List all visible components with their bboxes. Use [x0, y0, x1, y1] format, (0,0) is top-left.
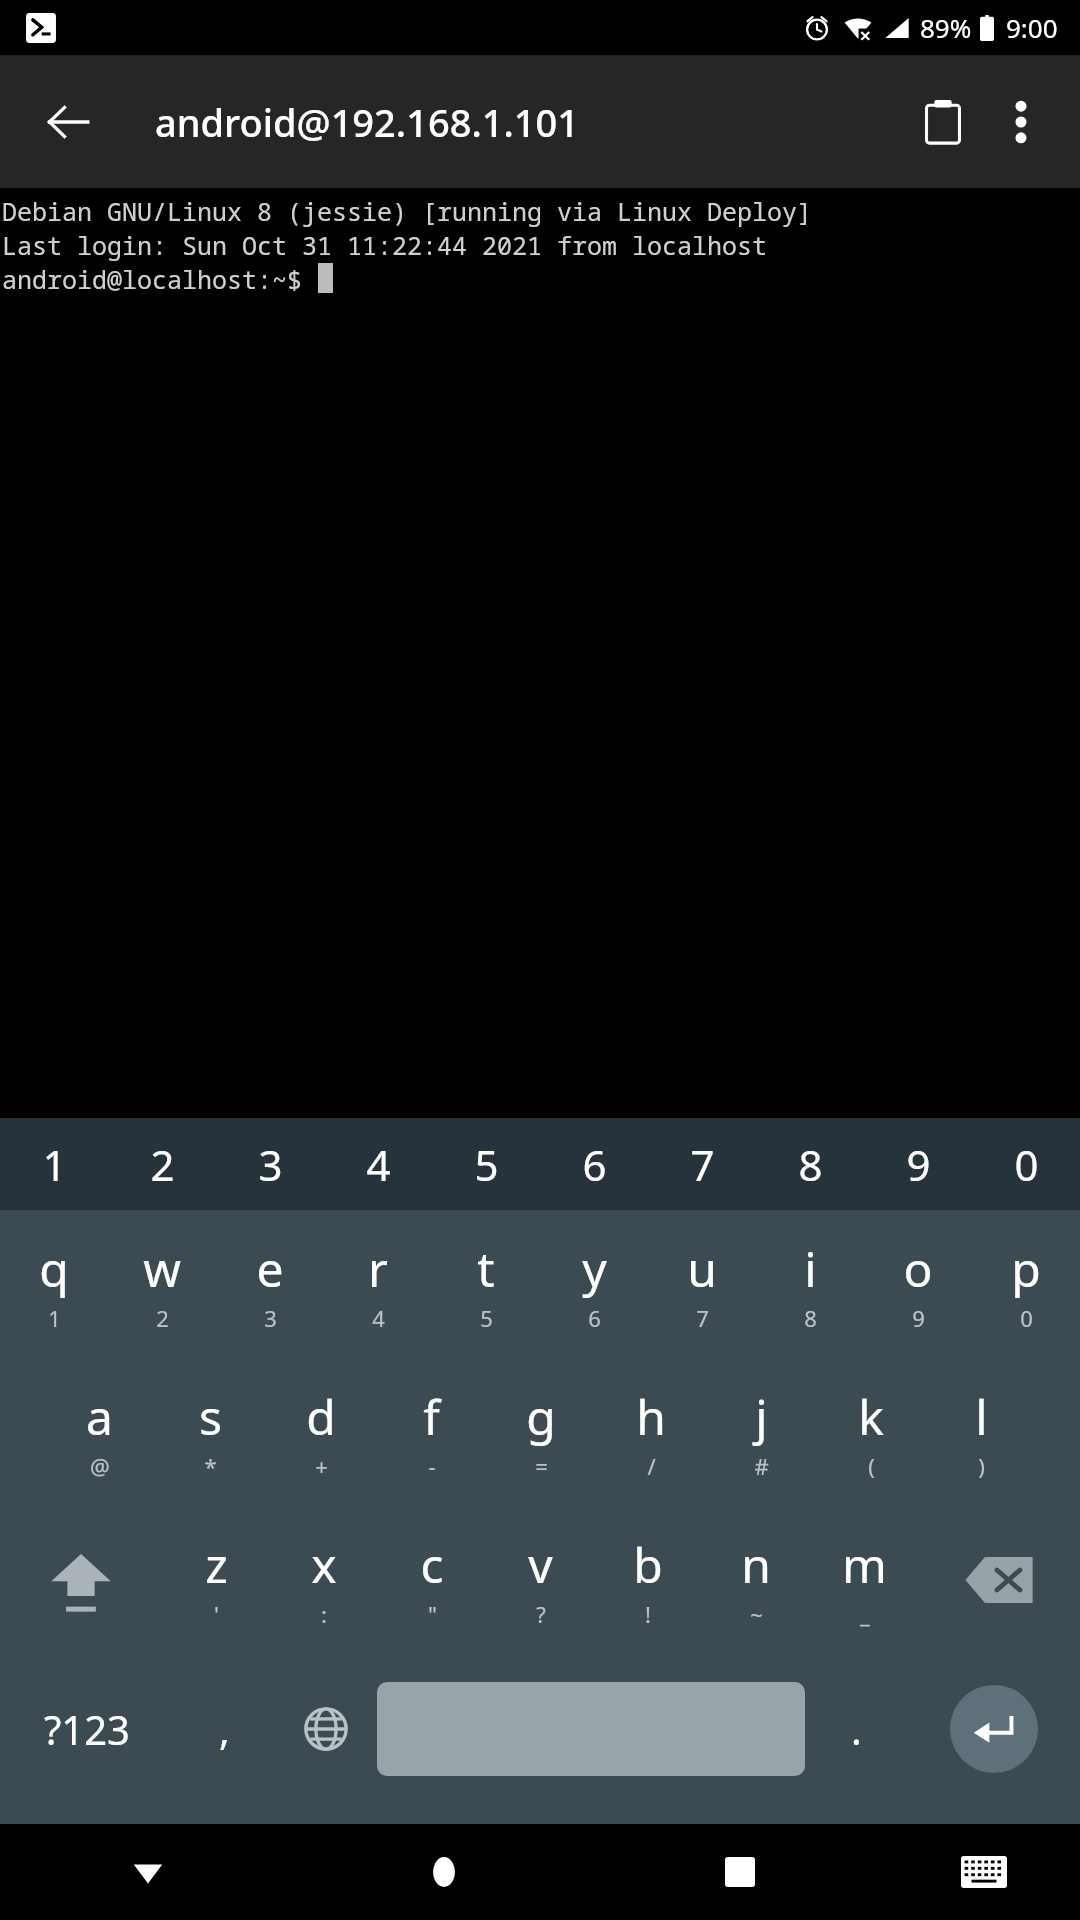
button[interactable]: e [216, 1210, 324, 1358]
button[interactable]: h [596, 1358, 706, 1506]
button[interactable]: f [376, 1358, 486, 1506]
staticText: l [975, 1384, 988, 1449]
staticText: 7 [690, 1136, 715, 1193]
button[interactable]: p [972, 1210, 1080, 1358]
staticText: * [204, 1451, 217, 1481]
button[interactable]: k [816, 1358, 926, 1506]
button[interactable]: 5 [432, 1118, 540, 1210]
button[interactable]: r [324, 1210, 432, 1358]
staticText: 8 [798, 1136, 823, 1193]
staticText: s [199, 1384, 222, 1449]
button[interactable]: 3 [216, 1118, 324, 1210]
button[interactable]: Keyboard [888, 1824, 1080, 1920]
staticText: 2 [156, 1303, 169, 1333]
staticText: o [903, 1236, 933, 1301]
staticText: u [687, 1236, 717, 1301]
staticText: 3 [258, 1136, 283, 1193]
staticText: 9 [912, 1303, 925, 1333]
button[interactable]: a [44, 1358, 155, 1506]
button[interactable]: 1 [0, 1118, 108, 1210]
button[interactable]: y [540, 1210, 648, 1358]
button[interactable]: i [756, 1210, 864, 1358]
staticText: c [420, 1532, 444, 1597]
staticText: . [851, 1702, 862, 1756]
staticText: 0 [1020, 1303, 1033, 1333]
button[interactable]: Back [32, 86, 104, 158]
staticText: " [428, 1599, 437, 1629]
button[interactable]: z [162, 1506, 270, 1654]
staticText: y [582, 1236, 607, 1301]
staticText: 5 [480, 1303, 493, 1333]
button[interactable]: Space [377, 1682, 805, 1776]
button[interactable]: 9 [864, 1118, 972, 1210]
button[interactable]: 7 [648, 1118, 756, 1210]
button[interactable]: m [810, 1506, 918, 1654]
staticText: - [428, 1451, 436, 1481]
staticText: : [321, 1599, 327, 1629]
button[interactable]: 0 [972, 1118, 1080, 1210]
staticText: # [754, 1451, 769, 1481]
staticText: 3 [264, 1303, 277, 1333]
button[interactable]: u [648, 1210, 756, 1358]
button[interactable]: Clipboard [904, 83, 982, 161]
staticText: 5 [474, 1136, 499, 1193]
button[interactable]: c [378, 1506, 486, 1654]
staticText: @ [90, 1451, 110, 1481]
staticText: _ [860, 1599, 870, 1629]
staticText: h [636, 1384, 666, 1449]
button[interactable]: 4 [324, 1118, 432, 1210]
staticText: g [526, 1384, 556, 1449]
button[interactable]: ?123 [0, 1654, 173, 1804]
staticText: / [647, 1451, 656, 1481]
button[interactable]: n [702, 1506, 810, 1654]
staticText: q [39, 1236, 69, 1301]
button[interactable]: , [173, 1654, 275, 1804]
button[interactable]: More options [982, 83, 1060, 161]
button[interactable]: Backspace [918, 1506, 1080, 1654]
staticText: 9:00 [1006, 10, 1058, 45]
staticText: n [741, 1532, 771, 1597]
button[interactable]: Recents [592, 1824, 888, 1920]
staticText: d [306, 1384, 336, 1449]
button[interactable]: . [805, 1654, 907, 1804]
button[interactable]: q [0, 1210, 108, 1358]
button[interactable]: x [270, 1506, 378, 1654]
button[interactable]: j [706, 1358, 816, 1506]
button[interactable]: v [486, 1506, 594, 1654]
staticText: v [528, 1532, 553, 1597]
button[interactable]: Home [296, 1824, 592, 1920]
staticText: t [477, 1236, 495, 1301]
staticText: i [804, 1236, 817, 1301]
button[interactable]: Shift [0, 1506, 162, 1654]
staticText: ~ [750, 1599, 763, 1629]
staticText: ?123 [44, 1702, 130, 1756]
staticText: 2 [150, 1136, 175, 1193]
button[interactable]: Change language [275, 1654, 377, 1804]
staticText: j [755, 1384, 768, 1449]
button[interactable]: o [864, 1210, 972, 1358]
button[interactable]: b [594, 1506, 702, 1654]
button[interactable]: g [486, 1358, 596, 1506]
staticText: x [311, 1532, 337, 1597]
staticText: 1 [42, 1136, 67, 1193]
staticText: p [1011, 1236, 1041, 1301]
button[interactable]: t [432, 1210, 540, 1358]
staticText: Debian GNU/Linux 8 (jessie) [running via… [2, 194, 813, 228]
button[interactable]: Enter [907, 1654, 1080, 1804]
button[interactable]: 6 [540, 1118, 648, 1210]
staticText: a [86, 1384, 113, 1449]
staticText: 0 [1014, 1136, 1039, 1193]
staticText: 6 [582, 1136, 607, 1193]
button[interactable]: s [155, 1358, 266, 1506]
button[interactable]: 2 [108, 1118, 216, 1210]
button[interactable]: l [926, 1358, 1036, 1506]
button[interactable]: Back [0, 1824, 296, 1920]
button[interactable]: 8 [756, 1118, 864, 1210]
staticText: f [423, 1384, 440, 1449]
staticText: 1 [48, 1303, 61, 1333]
staticText: ( [868, 1451, 875, 1481]
button[interactable]: w [108, 1210, 216, 1358]
staticText: 4 [366, 1136, 391, 1193]
button[interactable]: d [266, 1358, 376, 1506]
staticText: b [633, 1532, 663, 1597]
